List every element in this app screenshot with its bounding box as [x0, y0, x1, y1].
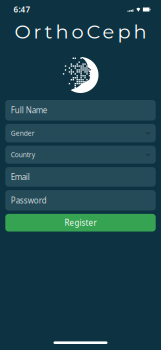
- staticText: Gender: [11, 129, 35, 138]
- staticText: Email: [11, 172, 30, 182]
- button[interactable]: Password: [5, 190, 156, 210]
- button[interactable]: Full Name: [5, 100, 156, 120]
- button[interactable]: Gender: [5, 124, 156, 142]
- staticText: OrthoCeph: [14, 20, 146, 43]
- staticText: Password: [11, 195, 47, 206]
- button[interactable]: Email: [5, 167, 156, 187]
- staticText: 6:47: [13, 4, 30, 15]
- staticText: Full Name: [11, 105, 48, 115]
- staticText: Country: [11, 150, 35, 159]
- button[interactable]: Register: [5, 214, 156, 231]
- staticText: Register: [64, 217, 96, 228]
- button[interactable]: Country: [5, 146, 156, 164]
